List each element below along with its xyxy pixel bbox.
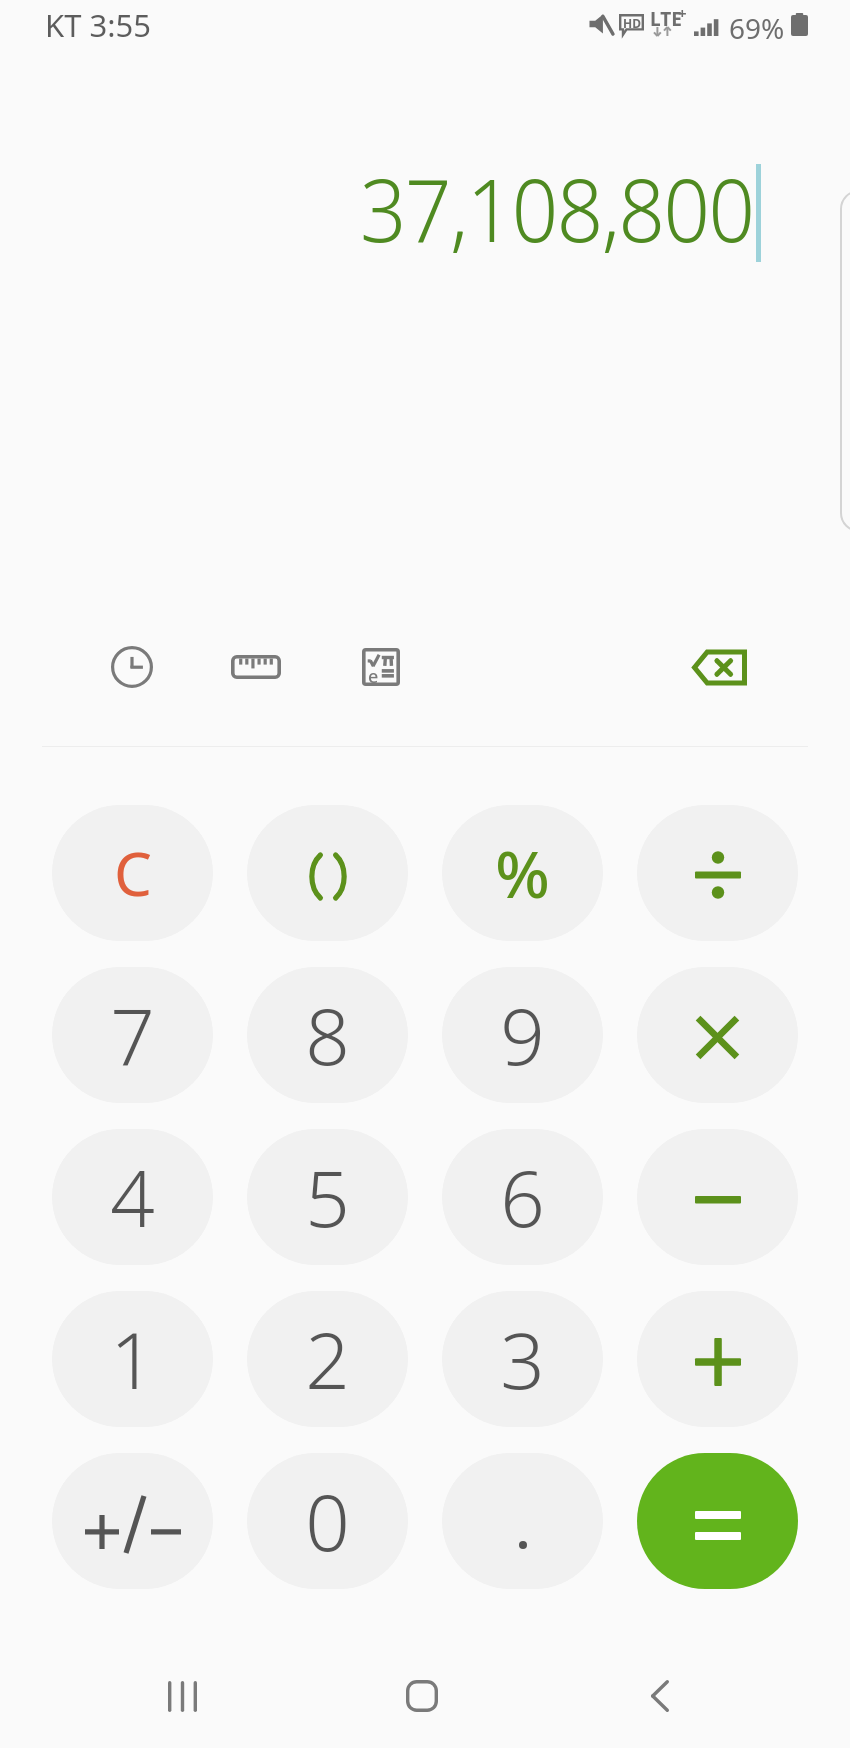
staticText: 37,108,800 (360, 150, 754, 267)
button[interactable]: Minus (637, 1129, 798, 1265)
button[interactable]: Parentheses (247, 805, 408, 941)
button[interactable]: 2 (247, 1291, 408, 1427)
staticText: 69% (729, 9, 785, 47)
button[interactable]: Back (618, 1654, 702, 1738)
staticText: 0 (305, 1468, 350, 1574)
button[interactable]: % (442, 805, 603, 941)
staticText: e (368, 664, 379, 689)
staticText: 5 (305, 1144, 350, 1250)
button[interactable]: Backspace (677, 625, 761, 709)
button[interactable]: Unit converter (214, 625, 298, 709)
button[interactable]: History (90, 625, 174, 709)
staticText: 2 (305, 1306, 350, 1412)
button[interactable]: 4 (52, 1129, 213, 1265)
staticText: C (114, 832, 152, 914)
button[interactable]: Home (380, 1654, 464, 1738)
button[interactable]: Decimal point (442, 1453, 603, 1589)
staticText: HD (623, 15, 641, 31)
button[interactable]: 7 (52, 967, 213, 1103)
button[interactable]: Multiply (637, 967, 798, 1103)
button[interactable]: Plus minus (52, 1453, 213, 1589)
staticText: 4 (110, 1144, 155, 1250)
button[interactable]: 3 (442, 1291, 603, 1427)
button[interactable]: Recents (140, 1654, 224, 1738)
button[interactable]: Plus (637, 1291, 798, 1427)
button[interactable]: Equals (637, 1453, 798, 1589)
button[interactable]: Scientific calculator (339, 625, 423, 709)
button[interactable]: 9 (442, 967, 603, 1103)
staticText: LTE (650, 6, 682, 32)
button[interactable]: C (52, 805, 213, 941)
button[interactable]: 1 (52, 1291, 213, 1427)
button[interactable]: 5 (247, 1129, 408, 1265)
staticText: 6 (500, 1144, 545, 1250)
staticText: KT 3:55 (45, 4, 151, 46)
button[interactable]: 6 (442, 1129, 603, 1265)
button[interactable]: 0 (247, 1453, 408, 1589)
staticText: 7 (110, 982, 155, 1088)
staticText: 9 (500, 982, 545, 1088)
staticText: % (495, 830, 550, 917)
staticText: 1 (110, 1306, 155, 1412)
staticText: 8 (305, 982, 350, 1088)
button[interactable]: Divide (637, 805, 798, 941)
staticText: + (678, 3, 687, 23)
button[interactable]: 8 (247, 967, 408, 1103)
staticText: 3 (500, 1306, 545, 1412)
